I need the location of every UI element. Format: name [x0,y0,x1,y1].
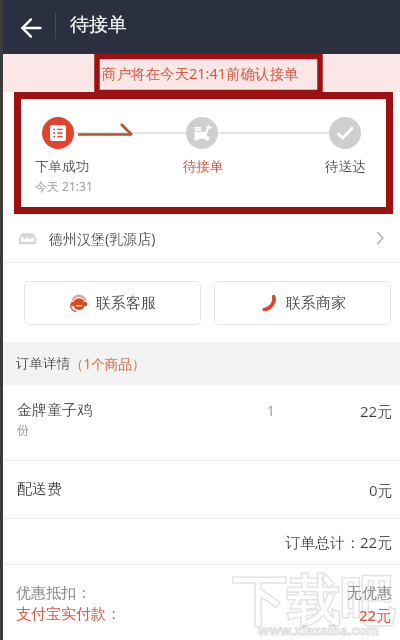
staticText: 今天 21:31 [35,178,93,194]
staticText: 联系客服 [96,294,156,313]
staticText: 1 [267,402,275,420]
staticText: 优惠抵扣： [16,584,91,603]
button[interactable]: Back [13,10,48,45]
button[interactable]: 联系商家 [214,281,391,325]
staticText: 22元 [360,401,393,421]
staticText: 22元 [359,605,392,625]
staticText: 份 [17,422,29,437]
staticText: 金牌童子鸡 [17,401,92,420]
staticText: 下单成功 [35,158,89,175]
staticText: （1个商品） [70,355,146,373]
staticText: 德州汉堡(乳源店) [49,229,156,248]
staticText: 待接单 [183,158,224,175]
staticText: 待送达 [325,158,366,175]
other: Open store [372,230,388,246]
staticText: www.xiazaiba.com [258,621,379,639]
staticText: 无优惠 [347,584,392,603]
staticText: 商户将在今天21:41前确认接单 [102,63,299,83]
staticText: 待接单 [70,13,127,37]
staticText: 支付宝实付款： [16,605,121,624]
button[interactable]: 联系客服 [24,281,201,325]
button[interactable]: 德州汉堡(乳源店) [0,214,400,262]
staticText: 联系商家 [286,294,346,313]
staticText: 下载吧 [232,568,394,636]
staticText: 订单总计：22元 [285,532,393,552]
staticText: 配送费 [17,480,62,499]
staticText: 0元 [369,480,393,500]
staticText: 订单详情 [16,355,70,372]
